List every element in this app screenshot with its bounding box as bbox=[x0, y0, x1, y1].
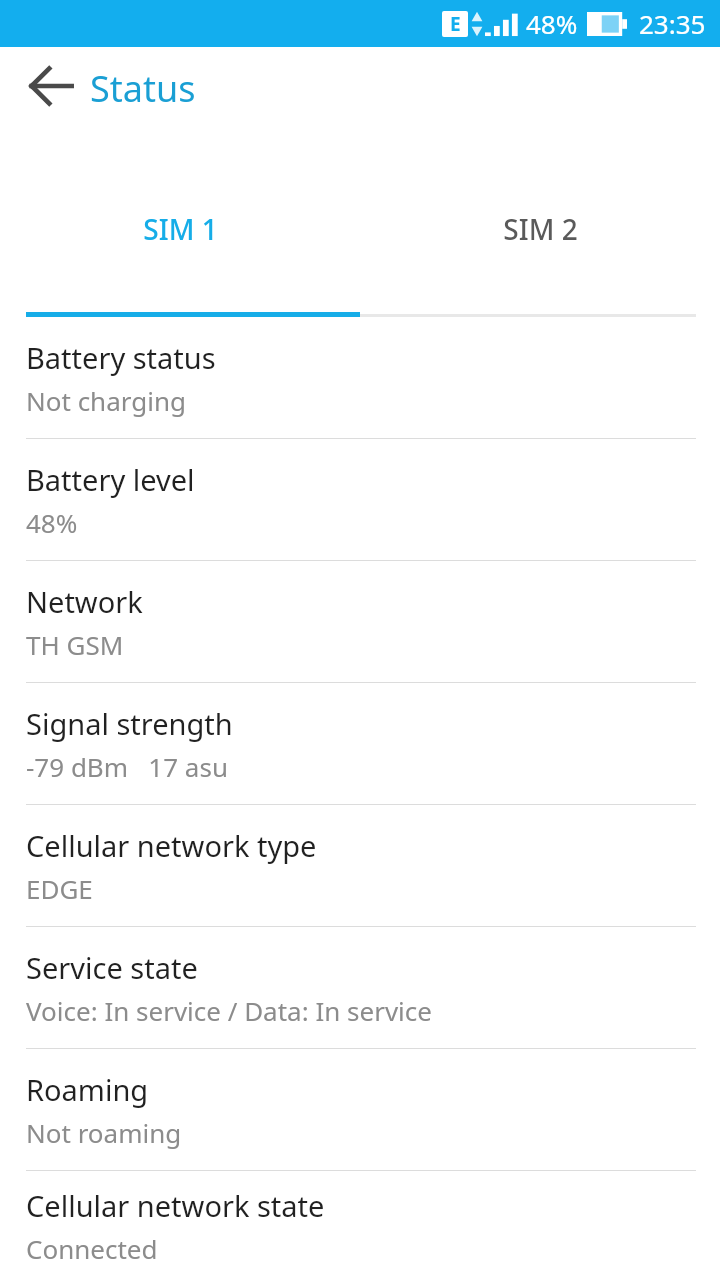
staticText: Signal strength bbox=[26, 704, 233, 743]
staticText: -79 dBm 17 asu bbox=[26, 749, 228, 784]
button[interactable]: Battery status bbox=[0, 317, 720, 439]
staticText: Cellular network type bbox=[26, 826, 317, 865]
button[interactable]: SIM 1 bbox=[0, 165, 360, 317]
staticText: 48% bbox=[26, 505, 78, 540]
staticText: Not charging bbox=[26, 383, 187, 418]
button[interactable]: Cellular network type bbox=[0, 805, 720, 927]
staticText: EDGE bbox=[26, 871, 93, 906]
staticText: 23:35 bbox=[639, 6, 706, 41]
staticText: Connected bbox=[26, 1231, 158, 1266]
staticText: Roaming bbox=[26, 1070, 149, 1109]
button[interactable]: Network bbox=[0, 561, 720, 683]
button[interactable]: Service state bbox=[0, 927, 720, 1049]
staticText: SIM 2 bbox=[503, 210, 578, 248]
button[interactable]: Battery level bbox=[0, 439, 720, 561]
button[interactable]: Signal strength bbox=[0, 683, 720, 805]
staticText: Battery level bbox=[26, 460, 195, 499]
button[interactable]: Back bbox=[12, 47, 90, 125]
staticText: TH GSM bbox=[26, 627, 124, 662]
button[interactable]: Roaming bbox=[0, 1049, 720, 1171]
staticText: Cellular network state bbox=[26, 1186, 325, 1225]
staticText: Service state bbox=[26, 948, 198, 987]
staticText: SIM 1 bbox=[143, 210, 218, 248]
staticText: Network bbox=[26, 582, 143, 621]
staticText: Battery status bbox=[26, 338, 216, 377]
staticText: 48% bbox=[526, 6, 578, 41]
button[interactable]: SIM 2 bbox=[360, 165, 720, 317]
staticText: Status bbox=[90, 64, 196, 113]
staticText: Not roaming bbox=[26, 1115, 182, 1150]
button[interactable]: Cellular network state bbox=[0, 1171, 720, 1280]
staticText: E bbox=[450, 11, 461, 37]
staticText: Voice: In service / Data: In service bbox=[26, 993, 432, 1028]
